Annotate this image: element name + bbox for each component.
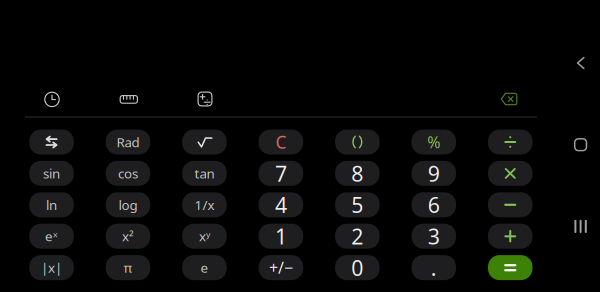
button[interactable]: π: [106, 255, 150, 280]
button[interactable]: 1/x: [182, 192, 227, 217]
button[interactable]: Calculator: [183, 83, 227, 115]
staticText: 9: [428, 159, 440, 187]
staticText: 1/x: [194, 196, 214, 214]
staticText: ln: [46, 196, 57, 214]
button[interactable]: 1: [259, 224, 303, 249]
button[interactable]: History: [30, 83, 74, 115]
staticText: x²: [122, 227, 134, 245]
button[interactable]: Equals: [488, 255, 532, 280]
button[interactable]: e: [182, 255, 227, 280]
button[interactable]: Multiply: [488, 161, 532, 186]
staticText: 0: [351, 253, 363, 282]
button[interactable]: .: [412, 255, 456, 280]
staticText: Rad: [116, 133, 139, 151]
button[interactable]: tan: [182, 161, 227, 186]
button[interactable]: 5: [335, 192, 380, 217]
button[interactable]: sin: [29, 161, 74, 186]
staticText: 7: [275, 159, 287, 187]
staticText: 1: [275, 222, 287, 250]
button[interactable]: 9: [412, 161, 456, 186]
staticText: 3: [428, 222, 440, 250]
button[interactable]: Minus: [488, 192, 532, 217]
button[interactable]: C: [259, 129, 303, 154]
button[interactable]: log: [106, 192, 150, 217]
staticText: +/−: [269, 257, 293, 278]
button[interactable]: 8: [335, 161, 380, 186]
staticText: log: [118, 196, 137, 214]
staticText: 2: [351, 222, 363, 250]
button[interactable]: Square root: [182, 129, 227, 154]
staticText: %: [427, 131, 440, 153]
staticText: |x|: [41, 259, 62, 276]
staticText: eˣ: [45, 227, 58, 245]
button[interactable]: Divide: [488, 129, 532, 154]
button[interactable]: Backspace: [487, 83, 531, 115]
button[interactable]: ln: [29, 192, 74, 217]
staticText: xʸ: [199, 227, 210, 245]
button[interactable]: 2: [335, 224, 380, 249]
staticText: sin: [43, 164, 60, 182]
button[interactable]: 0: [335, 255, 380, 280]
button[interactable]: +/−: [259, 255, 303, 280]
staticText: 5: [351, 191, 363, 219]
staticText: C: [275, 130, 286, 153]
button[interactable]: Home: [563, 127, 599, 163]
staticText: .: [431, 253, 437, 282]
button[interactable]: Recent apps: [563, 208, 599, 244]
staticText: tan: [194, 164, 214, 182]
button[interactable]: Parentheses: [335, 129, 380, 154]
button[interactable]: |x|: [29, 255, 74, 280]
button[interactable]: eˣ: [29, 224, 74, 249]
button[interactable]: Back: [563, 45, 599, 81]
button[interactable]: xʸ: [182, 224, 227, 249]
staticText: e: [200, 259, 208, 276]
button[interactable]: x²: [106, 224, 150, 249]
button[interactable]: %: [412, 129, 456, 154]
button[interactable]: 4: [259, 192, 303, 217]
button[interactable]: 3: [412, 224, 456, 249]
staticText: π: [123, 259, 132, 276]
button[interactable]: 7: [259, 161, 303, 186]
staticText: 6: [428, 191, 440, 219]
button[interactable]: Unit converter: [107, 83, 151, 115]
staticText: cos: [118, 164, 138, 182]
button[interactable]: Rad: [106, 129, 150, 154]
staticText: 4: [275, 191, 287, 219]
staticText: 8: [351, 159, 363, 187]
button[interactable]: cos: [106, 161, 150, 186]
button[interactable]: 6: [412, 192, 456, 217]
button[interactable]: Plus: [488, 224, 532, 249]
button[interactable]: Toggle functions: [29, 129, 74, 154]
